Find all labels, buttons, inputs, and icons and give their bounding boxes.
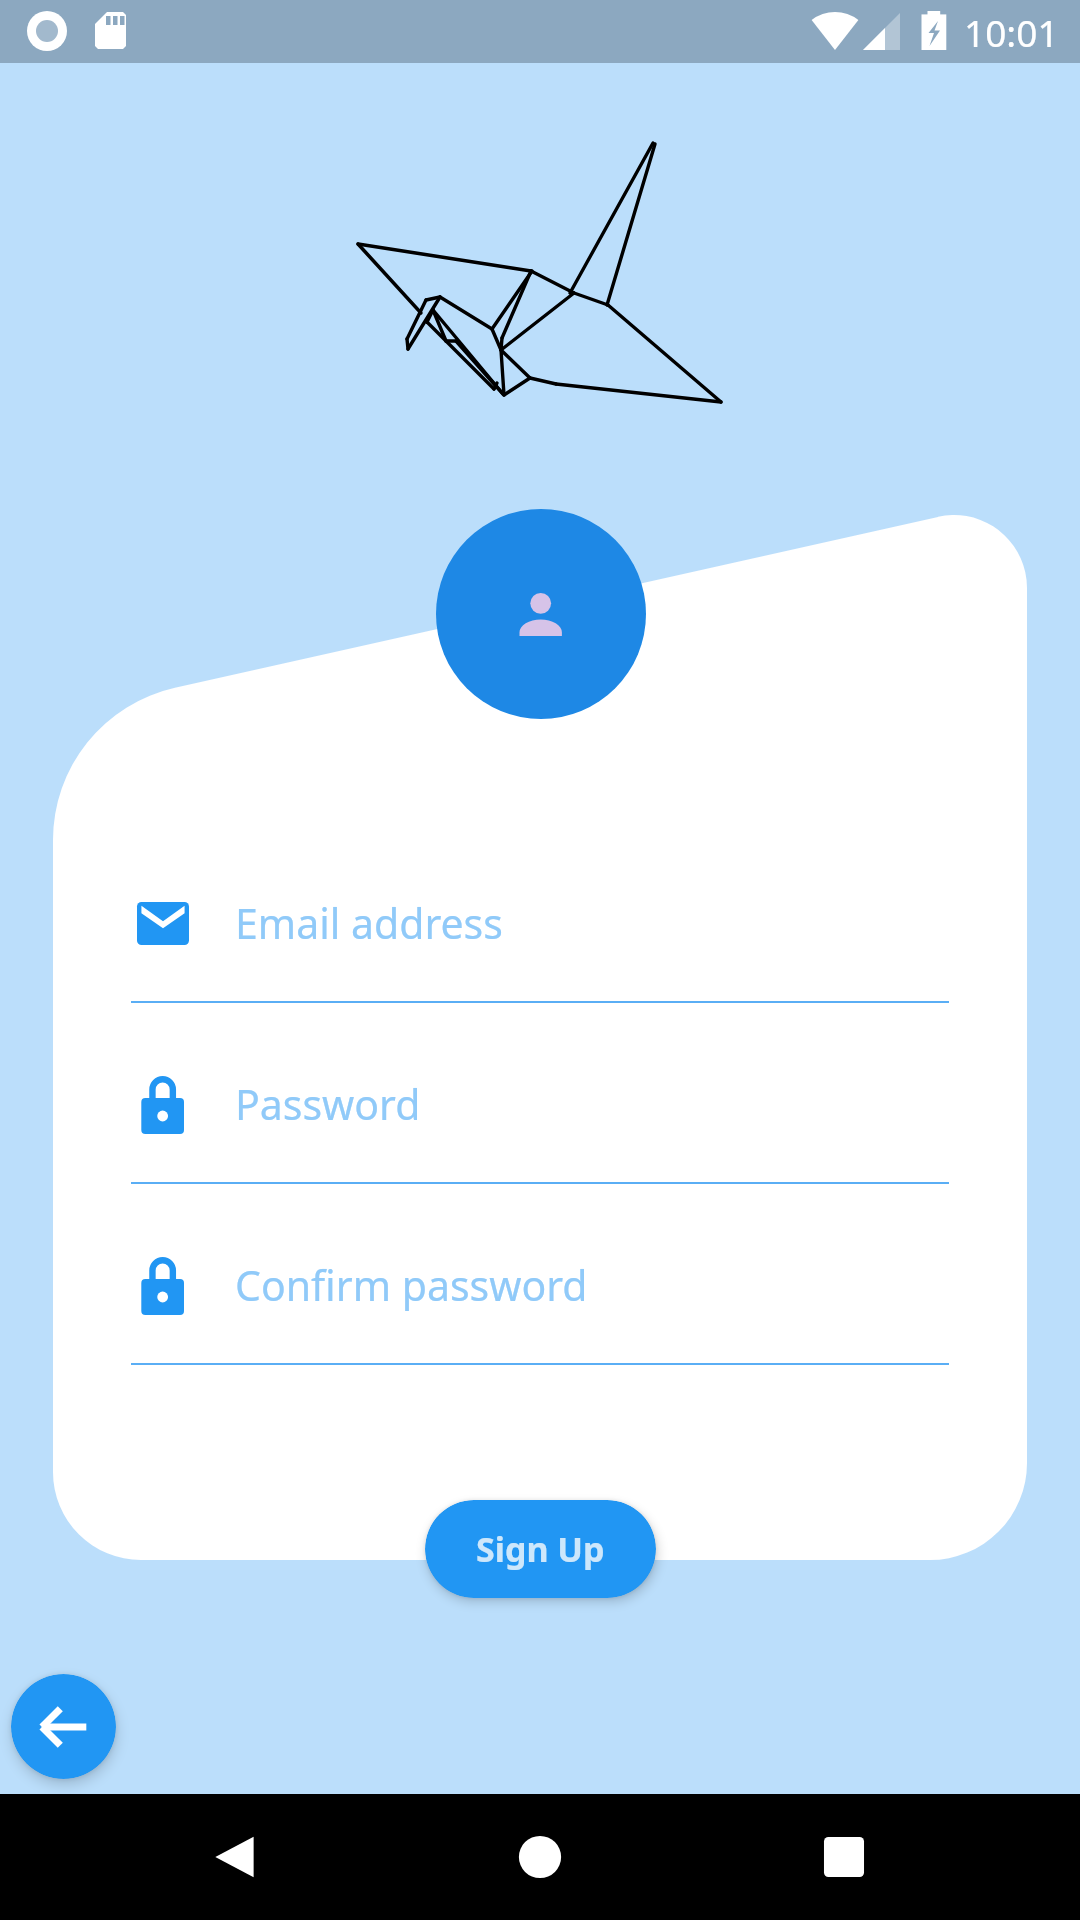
staticText: Password [235,1076,421,1132]
staticText: Email address [235,895,503,951]
button[interactable]: Email address [131,871,949,975]
staticText: 10:01 [964,7,1059,57]
button[interactable]: Home [474,1794,606,1920]
staticText: Sign Up [476,1526,605,1572]
button[interactable]: Sign Up [425,1500,656,1598]
button[interactable]: Back [170,1794,302,1920]
button[interactable]: Password [131,1052,949,1156]
button[interactable]: Recent apps [778,1794,910,1920]
button[interactable]: Confirm password [131,1233,949,1337]
staticText: Confirm password [235,1257,588,1313]
button[interactable]: Back [11,1674,116,1779]
button[interactable]: Profile photo [436,509,646,719]
